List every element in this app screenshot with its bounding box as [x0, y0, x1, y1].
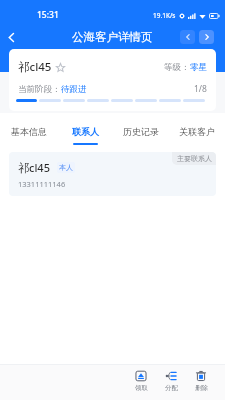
button[interactable]: 联系人 — [57, 113, 113, 151]
button[interactable]: 领取 — [126, 365, 156, 400]
button[interactable]: 分配 — [156, 365, 186, 400]
staticText: 删除 — [195, 384, 208, 392]
staticText: 基本信息 — [11, 126, 47, 137]
staticText: 分配 — [165, 384, 178, 392]
staticText: 13311111146 — [18, 179, 66, 189]
staticText: 等级： — [164, 62, 190, 73]
button[interactable]: 历史记录 — [113, 113, 169, 151]
staticText: 公海客户详情页 — [72, 30, 153, 44]
staticText: 待跟进 — [61, 84, 87, 95]
staticText: 历史记录 — [123, 126, 159, 137]
staticText: 零星 — [190, 62, 207, 73]
staticText: 联系人 — [72, 126, 99, 137]
staticText: 本人 — [59, 163, 73, 172]
button[interactable]: 关联客户 — [169, 113, 225, 151]
staticText: 15:31 — [37, 9, 59, 21]
staticText: 关联客户 — [179, 126, 215, 137]
button[interactable]: Previous record — [180, 30, 195, 44]
staticText: 祁cl45 — [18, 160, 50, 175]
staticText: 领取 — [135, 384, 148, 392]
button[interactable]: 祁cl45 — [9, 152, 216, 196]
button[interactable]: Next record — [199, 30, 214, 44]
staticText: 19.1K/s — [153, 11, 176, 20]
staticText: 当前阶段： — [18, 84, 61, 95]
staticText: 祁cl45 — [18, 59, 52, 75]
button[interactable]: 删除 — [186, 365, 216, 400]
button[interactable]: Back — [0, 27, 22, 47]
button[interactable]: 基本信息 — [0, 113, 57, 151]
staticText: 1/8 — [194, 83, 207, 95]
staticText: 主要联系人 — [177, 154, 212, 163]
